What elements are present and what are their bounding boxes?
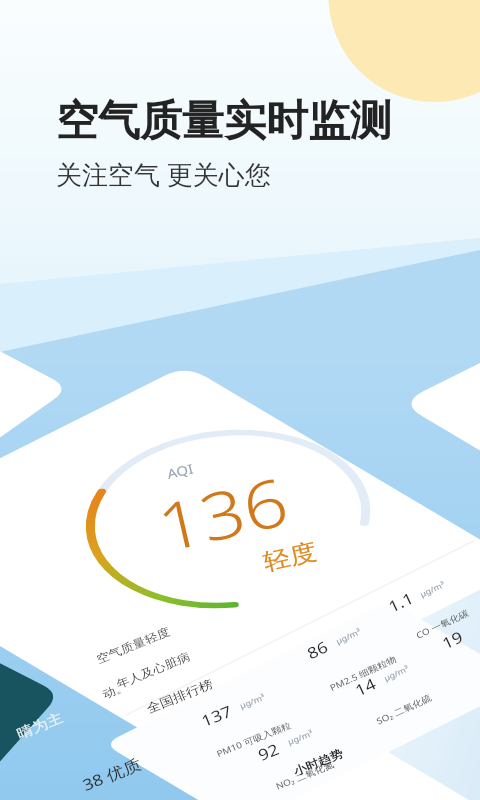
staticText: 轻度 bbox=[260, 537, 320, 577]
staticText: 92 bbox=[255, 738, 282, 766]
staticText: 86 bbox=[304, 636, 332, 664]
staticText: 137 bbox=[198, 700, 235, 732]
staticText: 关注空气 更关心您 bbox=[56, 156, 271, 192]
staticText: SO₂ 二氧化硫 bbox=[374, 691, 434, 727]
staticText: µg/m³ bbox=[238, 691, 267, 711]
staticText: 小时趋势 bbox=[291, 746, 345, 778]
staticText: 14 bbox=[352, 673, 380, 701]
staticText: µg/m³ bbox=[382, 662, 411, 683]
staticText: 动。 bbox=[100, 679, 130, 701]
staticText: 19 bbox=[439, 626, 467, 654]
staticText: AQI bbox=[165, 459, 196, 482]
staticText: µg/m³ bbox=[334, 625, 363, 646]
staticText: 136 bbox=[149, 455, 296, 569]
staticText: 晴为主 bbox=[14, 709, 65, 743]
staticText: 空气质量实时监测 bbox=[56, 95, 392, 148]
staticText: µg/m³ bbox=[418, 578, 447, 599]
staticText: 1.1 bbox=[385, 587, 418, 618]
staticText: µg/m³ bbox=[286, 727, 315, 747]
staticText: 38 优质 bbox=[79, 753, 145, 796]
staticText: PM10 可吸入颗粒 bbox=[215, 718, 293, 759]
staticText: 空气质量轻度 bbox=[94, 624, 172, 666]
staticText: NO₂ 二氧化氮 bbox=[274, 758, 336, 792]
staticText: 年人及心脏病 bbox=[114, 649, 192, 691]
staticText: 全国排行榜 bbox=[145, 677, 215, 717]
staticText: PM2.5 细颗粒物 bbox=[328, 652, 398, 694]
staticText: CO 一氧化碳 bbox=[414, 606, 471, 641]
